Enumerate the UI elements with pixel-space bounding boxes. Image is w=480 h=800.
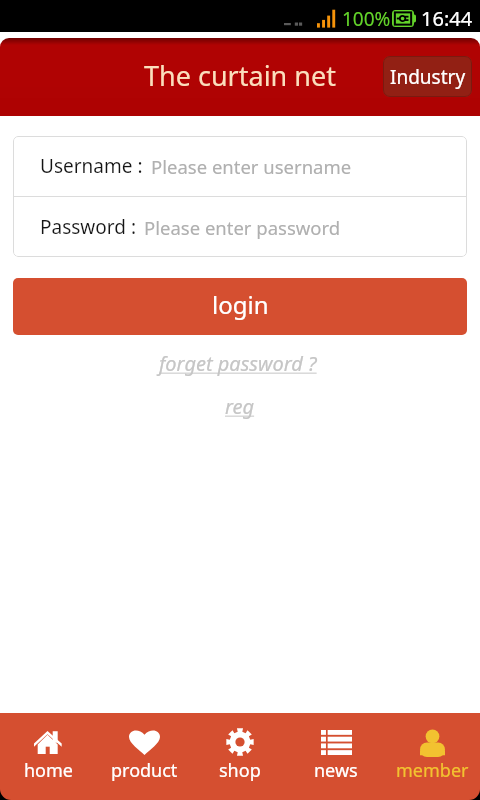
staticText: home — [24, 758, 73, 783]
staticText: member — [396, 758, 469, 783]
staticText: Password : — [40, 214, 136, 240]
button[interactable]: news — [288, 713, 384, 798]
button[interactable]: product — [96, 713, 192, 798]
staticText: forget password ? — [159, 350, 322, 377]
staticText: product — [111, 758, 178, 783]
button[interactable]: Industry — [383, 56, 472, 97]
button[interactable]: member — [384, 713, 480, 798]
button[interactable]: forget password ? — [159, 350, 322, 377]
button[interactable]: login — [13, 278, 467, 335]
staticText: 16:44 — [421, 5, 473, 32]
staticText: reg — [225, 393, 255, 420]
staticText: Username : — [40, 153, 143, 179]
button[interactable]: reg — [225, 393, 255, 420]
staticText: shop — [219, 758, 261, 783]
staticText: news — [314, 758, 358, 783]
staticText: 100% — [342, 6, 391, 32]
button[interactable]: Username : — [13, 136, 467, 196]
staticText: Please enter username — [151, 154, 352, 179]
staticText: login — [212, 288, 269, 321]
staticText: The curtain net — [144, 57, 336, 94]
button[interactable]: home — [0, 713, 96, 798]
button[interactable]: Password : — [13, 197, 467, 257]
staticText: Please enter password — [144, 215, 341, 240]
staticText: Industry — [390, 64, 466, 90]
button[interactable]: shop — [192, 713, 288, 798]
